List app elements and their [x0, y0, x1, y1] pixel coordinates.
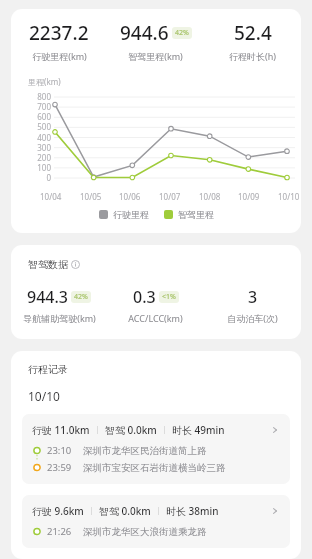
- staticText: 400: [15, 132, 51, 143]
- staticText: 里程(km): [28, 76, 61, 87]
- staticText: 行驶 9.6km: [32, 504, 84, 518]
- staticText: 行程记录: [28, 363, 68, 376]
- staticText: 600: [15, 111, 51, 122]
- staticText: 行驶里程: [113, 209, 149, 220]
- staticText: 行程时长(h): [229, 50, 276, 62]
- staticText: 10/10: [28, 388, 60, 404]
- staticText: 深圳市龙华区民治街道简上路: [83, 445, 207, 457]
- staticText: 52.4: [234, 20, 272, 46]
- staticText: 10/09: [238, 191, 260, 202]
- staticText: 200: [15, 152, 51, 163]
- staticText: 时长 38min: [166, 504, 219, 518]
- staticText: 23:59: [47, 461, 72, 474]
- staticText: 智驾 0.0km: [105, 423, 157, 437]
- other: 查看行程详情: [270, 425, 280, 435]
- staticText: 700: [15, 101, 51, 112]
- staticText: 10/10: [278, 191, 300, 202]
- staticText: 自动泊车(次): [227, 312, 278, 324]
- staticText: 行驶 11.0km: [32, 423, 90, 437]
- staticText: <1%: [162, 292, 176, 302]
- staticText: 智驾数据: [28, 258, 68, 271]
- staticText: 3: [248, 286, 258, 308]
- staticText: 10/06: [119, 191, 141, 202]
- staticText: 800: [15, 91, 51, 102]
- staticText: 0.3: [133, 286, 156, 308]
- staticText: 智驾里程: [178, 209, 214, 220]
- staticText: 10/08: [199, 191, 221, 202]
- staticText: 深圳市龙华区大浪街道乘龙路: [83, 526, 207, 538]
- staticText: 100: [15, 162, 51, 173]
- staticText: 10/07: [159, 191, 181, 202]
- staticText: 10/04: [40, 191, 62, 202]
- staticText: 944.6: [120, 20, 169, 46]
- staticText: 行驶里程(km): [32, 50, 87, 62]
- staticText: 深圳市宝安区石岩街道横当岭三路: [83, 462, 226, 474]
- staticText: 智驾 0.0km: [99, 504, 151, 518]
- staticText: 944.3: [27, 286, 68, 308]
- staticText: 0: [15, 172, 51, 183]
- staticText: 42%: [175, 28, 189, 38]
- staticText: 23:10: [47, 444, 72, 457]
- staticText: 导航辅助驾驶(km): [23, 312, 96, 324]
- staticText: ACC/LCC(km): [128, 312, 183, 324]
- staticText: 21:26: [47, 525, 72, 538]
- staticText: 智驾里程(km): [128, 50, 183, 62]
- staticText: 2237.2: [29, 20, 89, 46]
- staticText: 42%: [74, 292, 88, 302]
- button[interactable]: 行驶 9.6km: [22, 495, 290, 548]
- button[interactable]: 行驶 11.0km: [22, 414, 290, 484]
- staticText: 500: [15, 121, 51, 132]
- other: 查看行程详情: [270, 506, 280, 516]
- staticText: 时长 49min: [172, 423, 225, 437]
- staticText: 10/05: [80, 191, 102, 202]
- button[interactable]: 智驾数据说明: [71, 260, 80, 269]
- staticText: 300: [15, 142, 51, 153]
